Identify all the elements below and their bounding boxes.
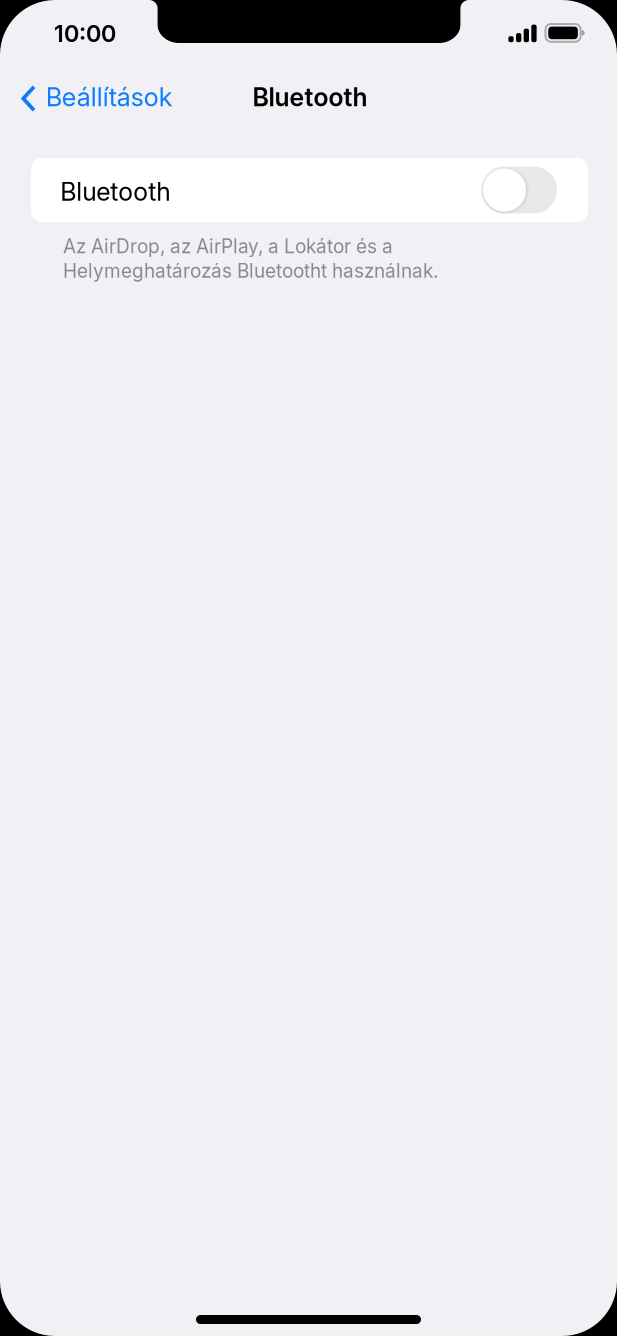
staticText: Bluetooth (252, 82, 367, 112)
staticText: Az AirDrop, az AirPlay, a Lokátor és a H… (63, 235, 438, 282)
button[interactable]: Bluetooth (31, 158, 588, 222)
staticText: Bluetooth (60, 177, 170, 207)
staticText: 10:00 (54, 19, 116, 47)
button[interactable]: Beállítások (11, 75, 184, 122)
staticText: Beállítások (46, 82, 173, 112)
